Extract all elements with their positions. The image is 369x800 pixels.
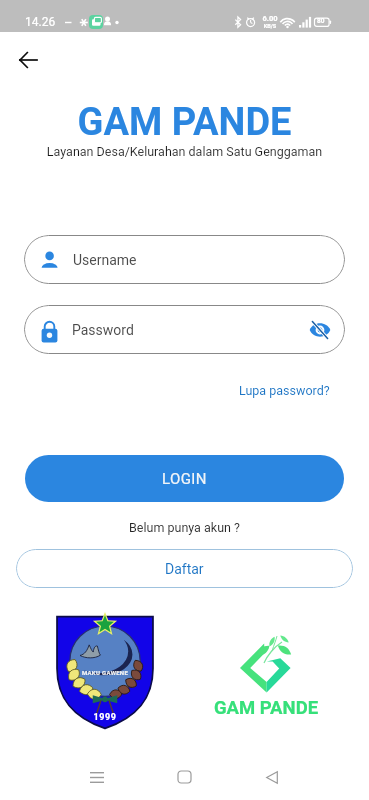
button[interactable]: Back: [13, 45, 43, 75]
staticText: Daftar: [165, 561, 204, 577]
button[interactable]: Password: [24, 305, 345, 354]
staticText: LOGIN: [162, 470, 207, 488]
button[interactable]: Daftar: [16, 549, 353, 588]
staticText: GAM PANDE: [206, 697, 326, 719]
button[interactable]: LOGIN: [25, 455, 344, 502]
staticText: KB/S: [260, 23, 280, 29]
button[interactable]: Username: [24, 235, 345, 284]
button[interactable]: Lupa password?: [235, 379, 334, 402]
staticText: Password: [72, 322, 134, 338]
staticText: 80: [317, 17, 325, 25]
staticText: 14.26: [25, 15, 56, 29]
button[interactable]: Back: [249, 764, 294, 790]
staticText: Lupa password?: [239, 383, 330, 398]
staticText: Username: [73, 252, 137, 268]
staticText: Layanan Desa/Kelurahan dalam Satu Gengga…: [0, 144, 369, 159]
staticText: GAM PANDE: [0, 100, 369, 145]
button[interactable]: Recent apps: [74, 764, 119, 790]
staticText: MAKU GAWENE: [54, 669, 156, 676]
staticText: Belum punya akun ?: [0, 520, 369, 535]
staticText: 6.00: [260, 14, 280, 23]
staticText: 1999: [54, 712, 156, 723]
button[interactable]: Home: [162, 764, 207, 790]
button[interactable]: Show password: [309, 319, 331, 341]
